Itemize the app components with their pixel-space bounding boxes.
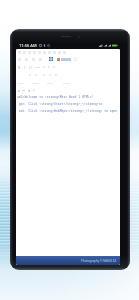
staticText: Photography © MAKO.XX	[81, 259, 117, 263]
staticText: 11:56 AM	[19, 43, 37, 48]
staticText: gin. Click <strong>Start</strong>;</stro…	[17, 102, 120, 106]
staticText: ?	[33, 88, 35, 93]
staticText: I	[24, 65, 26, 70]
staticText: ork. Click <strong>WebMaps</strong>;</st…	[17, 109, 120, 113]
staticText: xml>Welcome to <strong>Mass Word 1 HTML<…	[17, 95, 120, 99]
staticText: U	[29, 65, 32, 70]
staticText: B	[18, 65, 21, 70]
